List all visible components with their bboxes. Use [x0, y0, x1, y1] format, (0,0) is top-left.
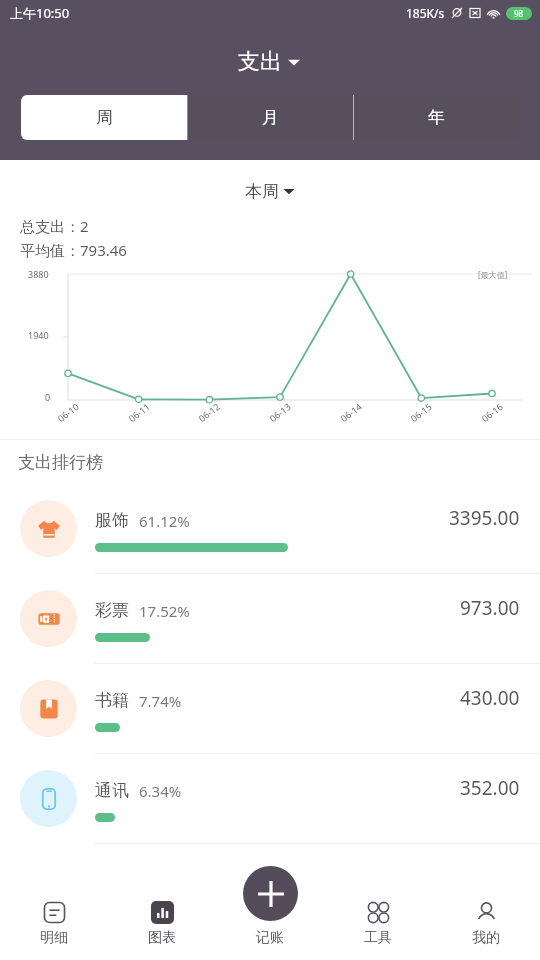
button[interactable]: 工具 [324, 888, 432, 960]
staticText: 0 [45, 391, 51, 403]
staticText: 月 [262, 107, 279, 128]
staticText: 352.00 [460, 775, 520, 801]
staticText: [最大值] [478, 269, 508, 280]
button[interactable]: 明细 [0, 888, 108, 960]
staticText: 06-10 [55, 400, 81, 424]
button[interactable]: 周 [21, 95, 187, 140]
staticText: 61.12% [139, 511, 190, 531]
staticText: 06-13 [267, 400, 293, 424]
staticText: 06-14 [338, 400, 364, 424]
staticText: 支出排行榜 [18, 452, 103, 473]
button[interactable]: 书籍 [0, 664, 540, 754]
staticText: 06-15 [408, 400, 434, 424]
button[interactable]: 本周 [245, 174, 296, 208]
staticText: 7.74% [139, 691, 182, 711]
staticText: 973.00 [460, 595, 520, 621]
staticText: 06-16 [479, 400, 505, 424]
button[interactable]: 年 [354, 95, 519, 140]
staticText: 1940 [28, 329, 49, 341]
staticText: 平均值：793.46 [20, 240, 127, 260]
staticText: 6.34% [139, 781, 182, 801]
button[interactable]: 我的 [432, 888, 540, 960]
staticText: 图表 [148, 929, 176, 947]
staticText: 185K/s [406, 5, 445, 21]
button[interactable]: 彩票 [0, 574, 540, 664]
staticText: 记账 [256, 929, 284, 947]
staticText: 支出 [238, 48, 282, 76]
staticText: 上午10:50 [10, 4, 70, 22]
staticText: 17.52% [139, 601, 190, 621]
button[interactable]: 服饰 [0, 484, 540, 574]
staticText: 通讯 [95, 780, 129, 801]
staticText: 3880 [28, 268, 49, 280]
staticText: 总支出：2 [20, 216, 89, 236]
staticText: 明细 [40, 929, 68, 947]
staticText: 书籍 [95, 690, 129, 711]
staticText: 我的 [472, 929, 500, 947]
staticText: 周 [96, 107, 113, 128]
staticText: 年 [428, 107, 445, 128]
button[interactable]: 图表 [108, 888, 216, 960]
button[interactable]: 支出 [238, 48, 302, 76]
staticText: 430.00 [460, 685, 520, 711]
staticText: 彩票 [95, 600, 129, 621]
button[interactable]: 通讯 [0, 754, 540, 844]
staticText: 06-11 [126, 400, 152, 424]
button[interactable]: 记账 [243, 866, 298, 921]
staticText: 工具 [364, 929, 392, 947]
button[interactable]: 月 [188, 95, 353, 140]
staticText: 服饰 [95, 510, 129, 531]
button[interactable]: 记账 [216, 888, 324, 960]
staticText: 98 [514, 8, 524, 19]
staticText: 本周 [245, 181, 279, 202]
staticText: 3395.00 [449, 505, 520, 531]
staticText: 06-12 [196, 400, 222, 424]
